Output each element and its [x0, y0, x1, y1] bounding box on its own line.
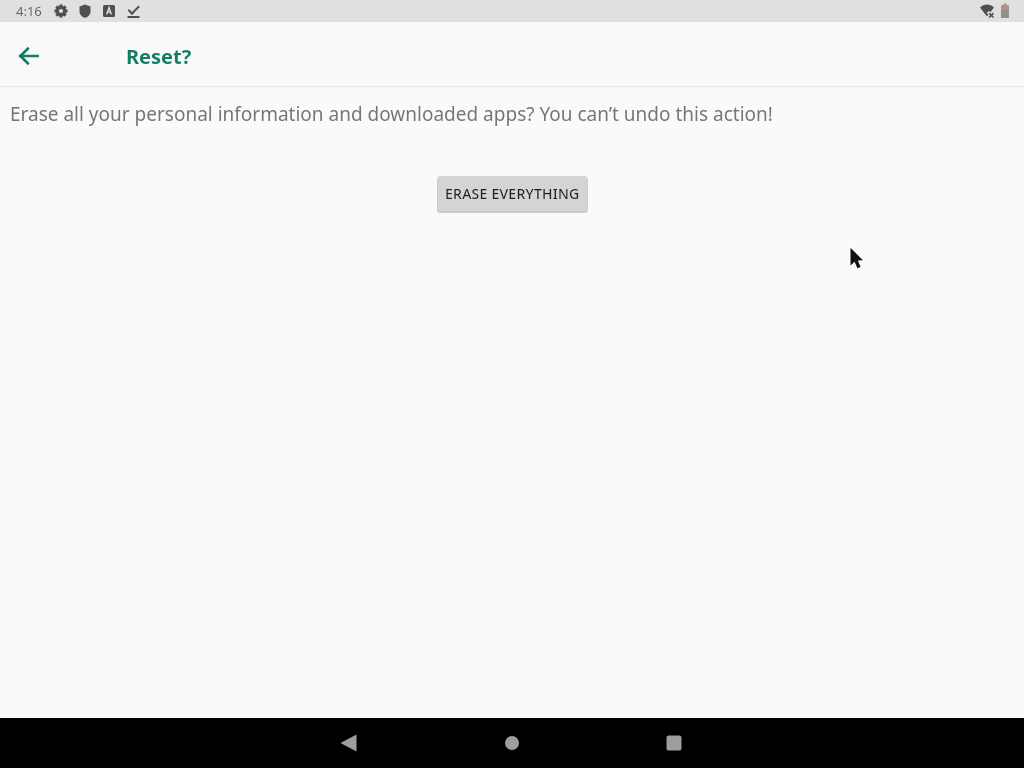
button[interactable] — [488, 719, 536, 767]
staticText: Erase all your personal information and … — [10, 101, 773, 127]
staticText: ERASE EVERYTHING — [445, 184, 580, 203]
button[interactable]: ERASE EVERYTHING — [438, 176, 587, 211]
button[interactable] — [325, 719, 373, 767]
staticText: 4:16 — [16, 2, 42, 20]
button[interactable] — [650, 719, 698, 767]
button[interactable] — [5, 32, 53, 80]
staticText: Reset? — [126, 43, 192, 70]
